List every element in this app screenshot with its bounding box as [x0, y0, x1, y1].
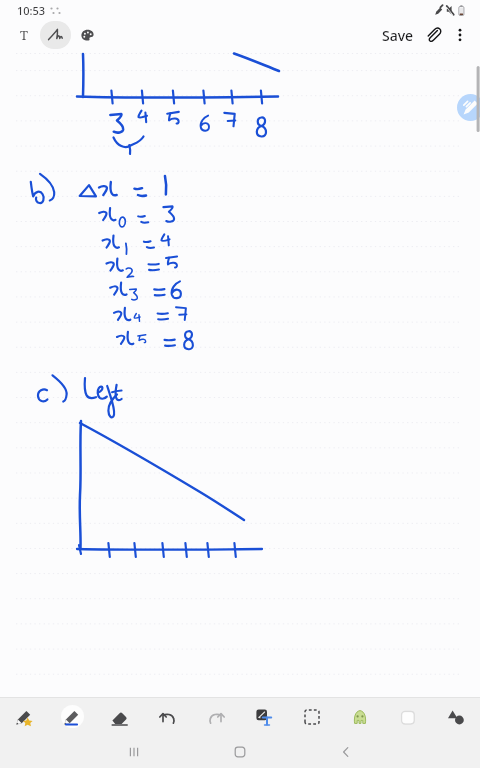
button[interactable]: Pen settings — [457, 94, 480, 121]
button[interactable]: More options — [448, 23, 472, 47]
button[interactable]: Undo — [144, 697, 192, 736]
button[interactable]: Save — [376, 22, 420, 49]
staticText: T — [20, 26, 28, 44]
staticText: 10:53 — [17, 3, 46, 18]
button[interactable]: Pen — [48, 697, 96, 736]
button[interactable]: Drawing tools — [432, 697, 480, 736]
button[interactable]: Colour palette — [71, 21, 103, 49]
button[interactable]: Insert — [336, 697, 384, 736]
staticText: Save — [382, 26, 414, 45]
button[interactable]: Pen mode — [40, 21, 71, 49]
button[interactable]: Redo — [192, 697, 240, 736]
button[interactable]: Shapes — [384, 697, 432, 736]
button[interactable]: Eraser — [96, 697, 144, 736]
button[interactable]: Home — [216, 736, 264, 768]
button[interactable]: Favourite pen — [0, 697, 48, 736]
button[interactable]: Convert to text — [240, 697, 288, 736]
button[interactable]: Attach — [420, 21, 448, 49]
button[interactable]: Text mode — [7, 21, 40, 49]
button[interactable]: Recents — [110, 736, 158, 768]
button[interactable]: Back — [322, 736, 370, 768]
button[interactable]: Select — [288, 697, 336, 736]
